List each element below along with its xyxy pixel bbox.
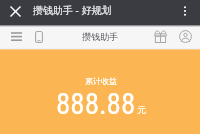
- button[interactable]: More options: [176, 2, 194, 20]
- button[interactable]: Gifts: [151, 25, 169, 48]
- button[interactable]: Close: [6, 2, 24, 20]
- button[interactable]: Device: [30, 25, 48, 48]
- button[interactable]: Menu: [7, 25, 25, 48]
- staticText: 攒钱助手 - 好规划: [33, 3, 112, 17]
- staticText: 元: [137, 104, 146, 115]
- staticText: 888.88: [56, 87, 136, 121]
- staticText: 累计收益: [85, 76, 117, 86]
- button[interactable]: Profile: [176, 25, 194, 48]
- staticText: 攒钱助手: [82, 31, 118, 42]
